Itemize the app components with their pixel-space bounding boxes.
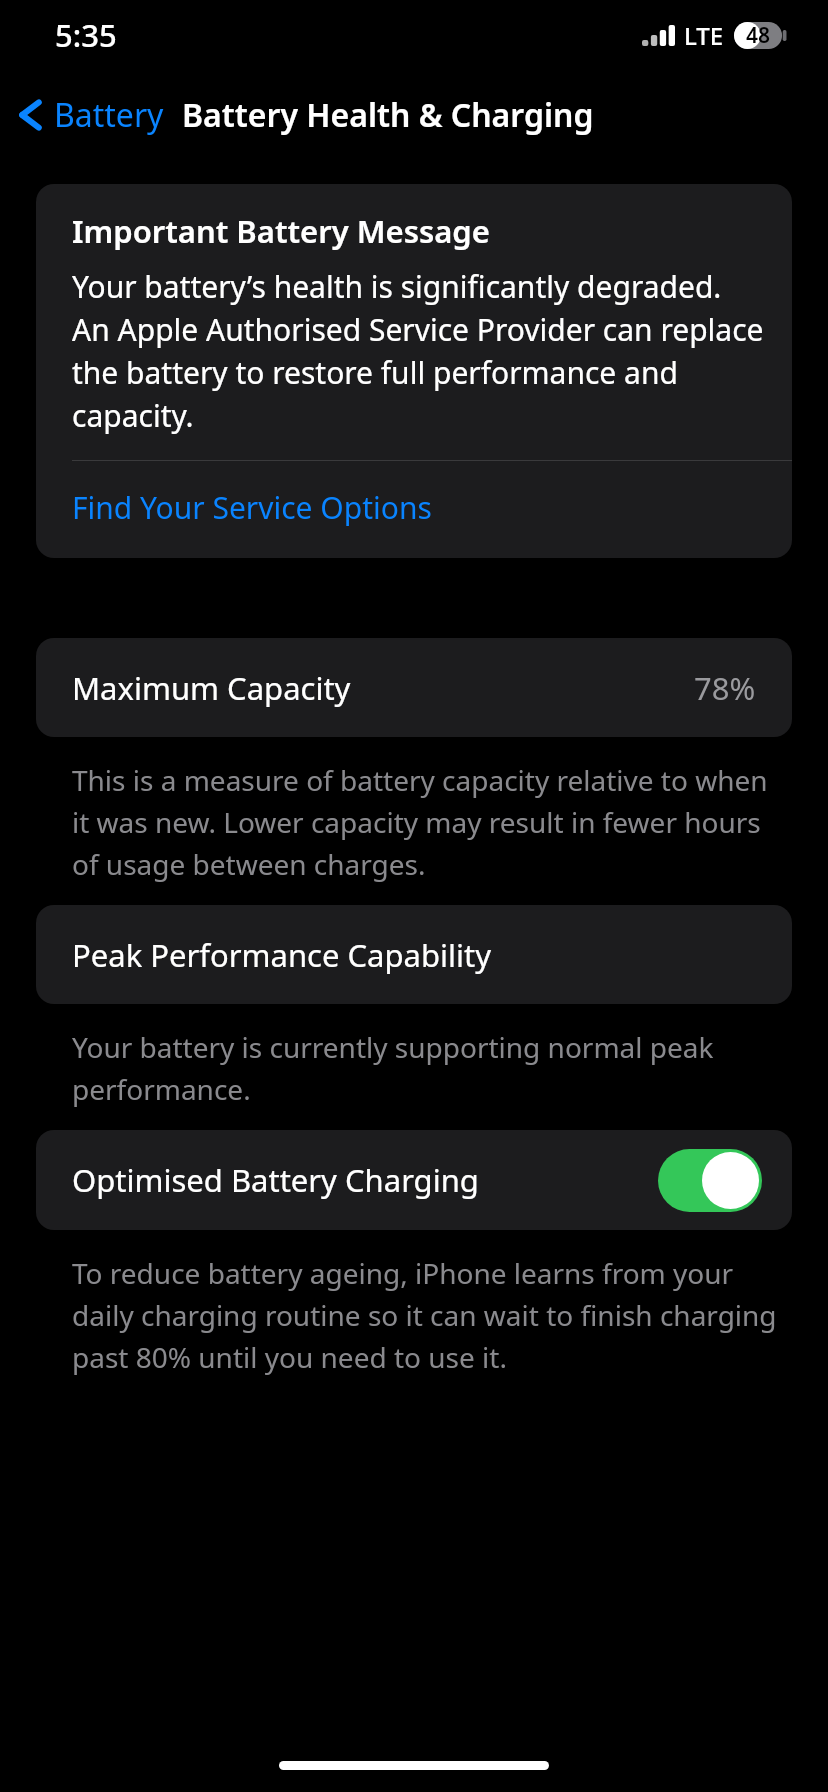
button[interactable]: Optimised Battery Charging, on bbox=[658, 1149, 762, 1212]
staticText: LTE bbox=[684, 19, 724, 52]
staticText: 48 bbox=[746, 21, 771, 50]
button[interactable]: Battery bbox=[0, 85, 174, 145]
button[interactable]: Find Your Service Options bbox=[36, 461, 792, 558]
staticText: Battery Health & Charging bbox=[182, 93, 594, 137]
button[interactable]: Maximum Capacity bbox=[36, 638, 792, 737]
staticText: This is a measure of battery capacity re… bbox=[72, 761, 778, 883]
button[interactable]: Optimised Battery Charging bbox=[36, 1130, 792, 1230]
staticText: 5:35 bbox=[55, 14, 117, 56]
staticText: Your battery’s health is significantly d… bbox=[72, 266, 764, 436]
button[interactable]: Peak Performance Capability bbox=[36, 905, 792, 1004]
staticText: Peak Performance Capability bbox=[72, 934, 491, 976]
staticText: Find Your Service Options bbox=[72, 487, 432, 528]
staticText: 78% bbox=[694, 667, 756, 709]
staticText: To reduce battery ageing, iPhone learns … bbox=[72, 1254, 778, 1376]
staticText: Your battery is currently supporting nor… bbox=[72, 1028, 778, 1108]
staticText: Important Battery Message bbox=[72, 210, 490, 252]
staticText: Battery bbox=[54, 93, 164, 137]
staticText: Optimised Battery Charging bbox=[72, 1159, 479, 1201]
staticText: Maximum Capacity bbox=[72, 667, 351, 709]
